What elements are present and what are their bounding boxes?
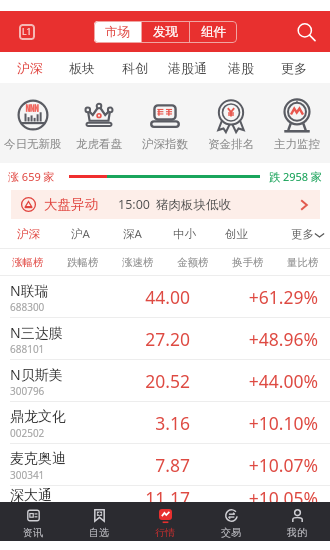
staticText: 更多: [281, 60, 307, 76]
button[interactable]: 龙虎看盘: [66, 83, 132, 163]
button[interactable]: 中小: [158, 220, 210, 248]
staticText: 涨速榜: [122, 256, 154, 269]
button[interactable]: Search: [290, 16, 322, 48]
button[interactable]: 自选: [66, 502, 132, 541]
button[interactable]: N三达膜: [0, 318, 330, 359]
staticText: 002502: [10, 426, 45, 440]
button[interactable]: 发现: [142, 21, 189, 43]
button[interactable]: 更多: [291, 220, 330, 248]
button[interactable]: 市场: [94, 21, 141, 43]
staticText: +44.00%: [231, 369, 318, 393]
staticText: 沪深: [17, 60, 43, 76]
staticText: 量比榜: [287, 256, 319, 269]
button[interactable]: N联瑞: [0, 276, 330, 317]
button[interactable]: 涨速榜: [110, 249, 165, 275]
button[interactable]: 跌幅榜: [55, 249, 110, 275]
button[interactable]: 交易: [198, 502, 264, 541]
staticText: 688101: [10, 342, 45, 356]
staticText: +10.05%: [231, 486, 318, 502]
staticText: 深A: [123, 226, 142, 242]
button[interactable]: 量比榜: [275, 249, 330, 275]
staticText: 港股: [228, 60, 254, 76]
staticText: 15:00: [118, 196, 150, 213]
button[interactable]: 组件: [190, 21, 237, 43]
staticText: L1: [22, 26, 32, 38]
staticText: 44.00: [130, 285, 190, 309]
staticText: 龙虎看盘: [76, 137, 122, 151]
staticText: 港股通: [168, 60, 207, 76]
staticText: 组件: [201, 24, 226, 40]
staticText: 麦克奥迪: [10, 450, 66, 468]
button[interactable]: 沪深: [2, 220, 54, 248]
button[interactable]: 今日无新股: [0, 83, 66, 163]
button[interactable]: 沪A: [54, 220, 106, 248]
staticText: 自选: [89, 526, 109, 539]
staticText: 科创: [122, 60, 148, 76]
staticText: 市场: [105, 24, 130, 40]
staticText: +48.96%: [231, 327, 318, 351]
button[interactable]: 换手榜: [220, 249, 275, 275]
button[interactable]: 港股通: [161, 52, 214, 83]
staticText: 跌幅榜: [67, 256, 99, 269]
staticText: 深大通: [10, 487, 52, 503]
staticText: +61.29%: [231, 285, 318, 309]
button[interactable]: 行情: [132, 502, 198, 541]
staticText: +10.07%: [231, 453, 318, 477]
button[interactable]: 深A: [106, 220, 158, 248]
button[interactable]: N贝斯美: [0, 360, 330, 401]
staticText: 沪深: [17, 227, 40, 241]
button[interactable]: 深大通: [0, 486, 330, 502]
staticText: 资金排名: [208, 137, 254, 151]
staticText: 7.87: [130, 453, 190, 477]
staticText: 今日无新股: [4, 137, 62, 151]
button[interactable]: 大盘异动: [11, 190, 320, 219]
button[interactable]: 港股: [214, 52, 267, 83]
staticText: 涨 659 家: [8, 169, 55, 184]
staticText: 涨幅榜: [12, 256, 44, 269]
button[interactable]: 资金排名: [198, 83, 264, 163]
button[interactable]: 资讯: [0, 502, 66, 541]
staticText: 11.17: [130, 486, 190, 502]
button[interactable]: 沪深: [4, 52, 56, 83]
staticText: 板块: [69, 60, 95, 76]
button[interactable]: 涨幅榜: [0, 249, 55, 275]
button[interactable]: 鼎龙文化: [0, 402, 330, 443]
button[interactable]: 创业: [210, 220, 262, 248]
staticText: 发现: [153, 24, 178, 40]
button[interactable]: 主力监控: [264, 83, 330, 163]
staticText: 行情: [155, 526, 175, 539]
staticText: 沪深指数: [142, 137, 188, 151]
staticText: 交易: [221, 526, 241, 539]
button[interactable]: 沪深指数: [132, 83, 198, 163]
staticText: 20.52: [130, 369, 190, 393]
staticText: 300341: [10, 468, 45, 482]
staticText: +10.10%: [231, 411, 318, 435]
staticText: 鼎龙文化: [10, 408, 66, 426]
button[interactable]: 更多: [267, 52, 320, 83]
staticText: 金额榜: [177, 256, 209, 269]
staticText: 沪A: [71, 226, 90, 242]
staticText: 跌 2958 家: [266, 169, 322, 184]
staticText: 更多: [291, 227, 314, 241]
staticText: 3.16: [130, 411, 190, 435]
staticText: N贝斯美: [10, 365, 63, 384]
staticText: 我的: [287, 526, 307, 539]
button[interactable]: 科创: [108, 52, 161, 83]
staticText: 资讯: [23, 526, 43, 539]
button[interactable]: 麦克奥迪: [0, 444, 330, 485]
staticText: 27.20: [130, 327, 190, 351]
staticText: 创业: [225, 227, 248, 241]
staticText: N联瑞: [10, 281, 49, 300]
staticText: 中小: [173, 227, 196, 241]
staticText: 换手榜: [232, 256, 264, 269]
button[interactable]: 我的: [264, 502, 330, 541]
button[interactable]: 板块: [56, 52, 108, 83]
staticText: 688300: [10, 300, 45, 314]
button[interactable]: 金额榜: [165, 249, 220, 275]
staticText: N三达膜: [10, 323, 63, 342]
staticText: 大盘异动: [44, 196, 98, 213]
button[interactable]: Quote level L1: [19, 24, 35, 40]
staticText: 300796: [10, 384, 45, 398]
staticText: 主力监控: [274, 137, 320, 151]
staticText: 猪肉板块低收: [156, 197, 231, 213]
